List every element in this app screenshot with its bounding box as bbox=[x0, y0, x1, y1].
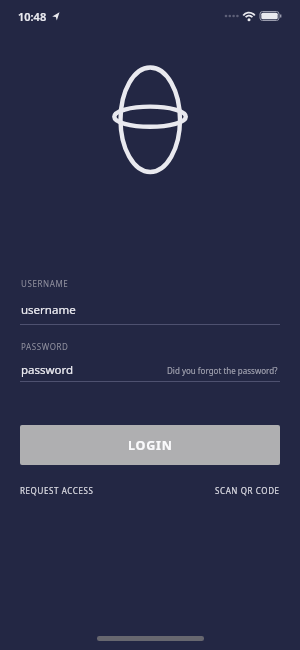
button[interactable]: REQUEST ACCESS bbox=[20, 485, 94, 496]
button[interactable]: LOGIN bbox=[20, 425, 280, 465]
staticText: SCAN QR CODE bbox=[215, 485, 280, 496]
staticText: PASSWORD bbox=[21, 341, 69, 352]
staticText: REQUEST ACCESS bbox=[20, 485, 94, 496]
button[interactable]: SCAN QR CODE bbox=[215, 485, 280, 496]
button[interactable]: Did you forgot the password? bbox=[167, 365, 278, 376]
staticText: password bbox=[21, 362, 74, 378]
staticText: USERNAME bbox=[21, 278, 69, 289]
button[interactable]: password bbox=[20, 355, 280, 382]
staticText: 10:48 bbox=[18, 9, 47, 24]
staticText: username bbox=[21, 302, 76, 318]
staticText: LOGIN bbox=[128, 437, 173, 454]
button[interactable]: username bbox=[20, 298, 280, 325]
